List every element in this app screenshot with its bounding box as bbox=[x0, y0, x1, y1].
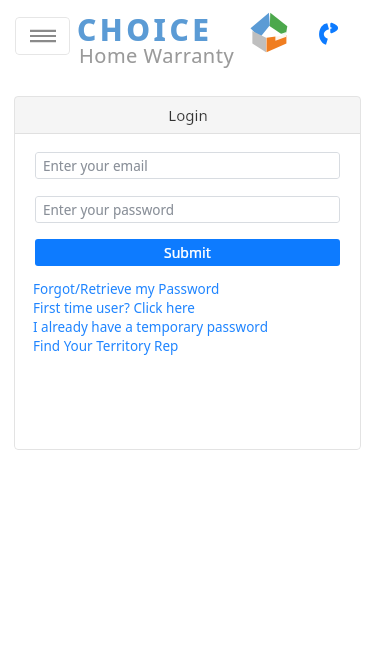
staticText: Find Your Territory Rep bbox=[33, 337, 179, 355]
staticText: I already have a temporary password bbox=[33, 318, 268, 336]
button[interactable]: I already have a temporary password bbox=[33, 317, 342, 336]
staticText: Home Warranty bbox=[79, 42, 235, 69]
button[interactable]: Forgot/Retrieve my Password bbox=[33, 279, 342, 298]
staticText: First time user? Click here bbox=[33, 299, 195, 317]
button[interactable]: Enter your password bbox=[35, 196, 340, 223]
staticText: Forgot/Retrieve my Password bbox=[33, 280, 220, 298]
button[interactable]: Menu bbox=[15, 17, 70, 55]
staticText: CHOICE bbox=[77, 9, 213, 50]
button[interactable]: Call bbox=[309, 14, 349, 54]
staticText: Enter your email bbox=[43, 157, 148, 175]
button[interactable]: First time user? Click here bbox=[33, 298, 342, 317]
staticText: Submit bbox=[164, 243, 211, 262]
button[interactable]: Submit bbox=[35, 239, 340, 266]
button[interactable]: Find Your Territory Rep bbox=[33, 336, 342, 355]
staticText: Login bbox=[168, 105, 208, 125]
staticText: Enter your password bbox=[43, 201, 175, 219]
button[interactable]: Enter your email bbox=[35, 152, 340, 179]
